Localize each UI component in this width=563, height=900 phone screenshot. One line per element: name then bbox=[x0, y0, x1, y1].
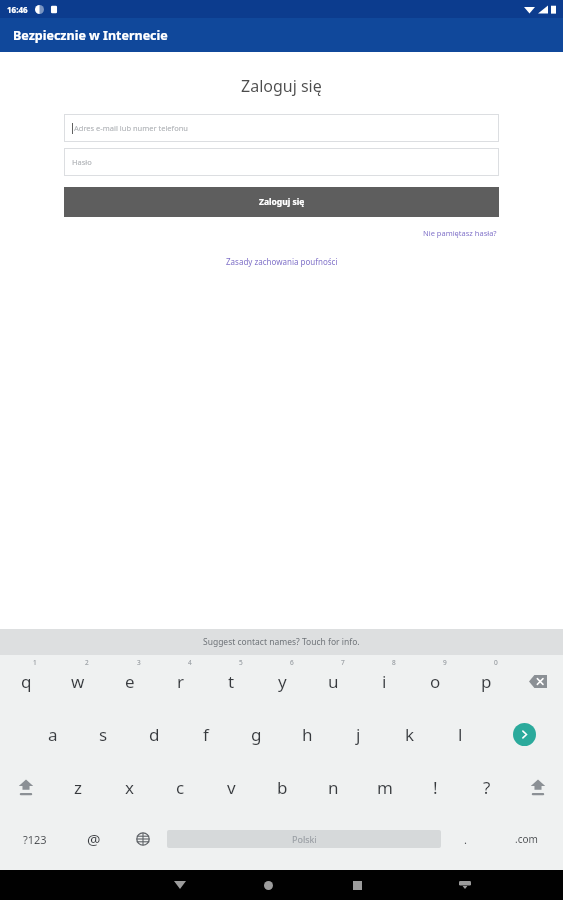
button[interactable]: z bbox=[52, 761, 104, 814]
staticText: k bbox=[405, 723, 415, 746]
button[interactable]: Adres e-mail lub numer telefonu bbox=[64, 114, 499, 142]
button[interactable]: s bbox=[78, 708, 129, 761]
button[interactable]: x bbox=[104, 761, 155, 814]
button[interactable]: k bbox=[384, 708, 435, 761]
staticText: t bbox=[228, 670, 235, 693]
button[interactable]: Change language bbox=[118, 814, 167, 864]
button[interactable]: o bbox=[410, 655, 461, 708]
button[interactable]: Nie pamiętasz hasła? bbox=[421, 226, 499, 240]
button[interactable]: @ bbox=[69, 814, 118, 864]
staticText: Polski bbox=[292, 833, 317, 845]
button[interactable]: Zaloguj się bbox=[64, 187, 499, 217]
staticText: e bbox=[125, 670, 135, 693]
button[interactable]: Backspace bbox=[512, 655, 563, 708]
button[interactable]: v bbox=[206, 761, 257, 814]
staticText: w bbox=[71, 670, 85, 693]
staticText: z bbox=[74, 776, 82, 799]
button[interactable]: ! bbox=[410, 761, 461, 814]
button[interactable]: h bbox=[282, 708, 333, 761]
button[interactable]: u bbox=[308, 655, 359, 708]
staticText: 2 bbox=[85, 658, 89, 667]
staticText: r bbox=[177, 670, 185, 693]
button[interactable]: q bbox=[0, 655, 52, 708]
staticText: 1 bbox=[33, 658, 37, 667]
button[interactable]: a bbox=[27, 708, 78, 761]
staticText: ! bbox=[433, 776, 438, 799]
staticText: 16:46 bbox=[7, 4, 28, 15]
staticText: Nie pamiętasz hasła? bbox=[423, 228, 497, 238]
button[interactable]: w bbox=[52, 655, 104, 708]
staticText: b bbox=[277, 776, 288, 799]
staticText: Hasło bbox=[72, 157, 92, 167]
staticText: g bbox=[251, 723, 262, 746]
staticText: s bbox=[99, 723, 108, 746]
button[interactable]: Shift bbox=[0, 761, 52, 814]
button[interactable]: m bbox=[359, 761, 410, 814]
button[interactable]: f bbox=[180, 708, 231, 761]
button[interactable]: Shift bbox=[512, 761, 563, 814]
staticText: .com bbox=[515, 832, 538, 846]
staticText: Zasady zachowania poufności bbox=[226, 256, 338, 267]
staticText: . bbox=[464, 832, 467, 847]
button[interactable]: Polski bbox=[167, 830, 441, 848]
staticText: h bbox=[302, 723, 313, 746]
staticText: ?123 bbox=[23, 832, 47, 847]
button[interactable]: g bbox=[231, 708, 282, 761]
staticText: Bezpiecznie w Internecie bbox=[13, 27, 168, 44]
staticText: @ bbox=[87, 829, 101, 849]
staticText: y bbox=[278, 670, 287, 693]
staticText: c bbox=[176, 776, 185, 799]
button[interactable]: y bbox=[257, 655, 308, 708]
staticText: m bbox=[377, 776, 393, 799]
button[interactable]: Enter bbox=[486, 708, 563, 761]
staticText: Adres e-mail lub numer telefonu bbox=[74, 123, 188, 133]
staticText: 7 bbox=[341, 658, 345, 667]
button[interactable]: l bbox=[435, 708, 486, 761]
button[interactable]: Recent apps bbox=[313, 870, 402, 900]
button[interactable]: i bbox=[359, 655, 410, 708]
button[interactable]: ?123 bbox=[0, 814, 69, 864]
button[interactable]: Back bbox=[135, 870, 224, 900]
button[interactable]: Hide keyboard bbox=[402, 870, 527, 900]
staticText: u bbox=[328, 670, 339, 693]
staticText: j bbox=[356, 723, 361, 746]
button[interactable]: b bbox=[257, 761, 308, 814]
staticText: x bbox=[125, 776, 134, 799]
staticText: 8 bbox=[392, 658, 396, 667]
staticText: l bbox=[458, 723, 463, 746]
staticText: v bbox=[227, 776, 236, 799]
staticText: q bbox=[21, 670, 32, 693]
button[interactable]: Hasło bbox=[64, 148, 499, 176]
button[interactable]: p bbox=[461, 655, 512, 708]
staticText: ? bbox=[483, 776, 491, 799]
staticText: f bbox=[203, 723, 209, 746]
staticText: o bbox=[430, 670, 441, 693]
staticText: i bbox=[382, 670, 387, 693]
staticText: 5 bbox=[239, 658, 243, 667]
staticText: 6 bbox=[290, 658, 294, 667]
button[interactable]: r bbox=[155, 655, 206, 708]
button[interactable]: . bbox=[441, 814, 490, 864]
button[interactable]: c bbox=[155, 761, 206, 814]
button[interactable]: ? bbox=[461, 761, 512, 814]
staticText: d bbox=[149, 723, 160, 746]
button[interactable]: t bbox=[206, 655, 257, 708]
button[interactable]: Zasady zachowania poufności bbox=[224, 254, 340, 269]
staticText: 3 bbox=[137, 658, 141, 667]
staticText: 0 bbox=[494, 658, 498, 667]
button[interactable]: e bbox=[104, 655, 155, 708]
button[interactable]: d bbox=[129, 708, 180, 761]
staticText: Suggest contact names? Touch for info. bbox=[203, 636, 360, 648]
button[interactable]: .com bbox=[490, 814, 563, 864]
staticText: Zaloguj się bbox=[259, 196, 305, 208]
button[interactable]: n bbox=[308, 761, 359, 814]
staticText: a bbox=[48, 723, 58, 746]
staticText: 4 bbox=[188, 658, 192, 667]
button[interactable]: j bbox=[333, 708, 384, 761]
staticText: p bbox=[481, 670, 492, 693]
staticText: n bbox=[328, 776, 339, 799]
button[interactable]: Home bbox=[224, 870, 313, 900]
button[interactable]: Suggest contact names? Touch for info. bbox=[0, 629, 563, 655]
staticText: 9 bbox=[443, 658, 447, 667]
staticText: Zaloguj się bbox=[241, 75, 322, 97]
